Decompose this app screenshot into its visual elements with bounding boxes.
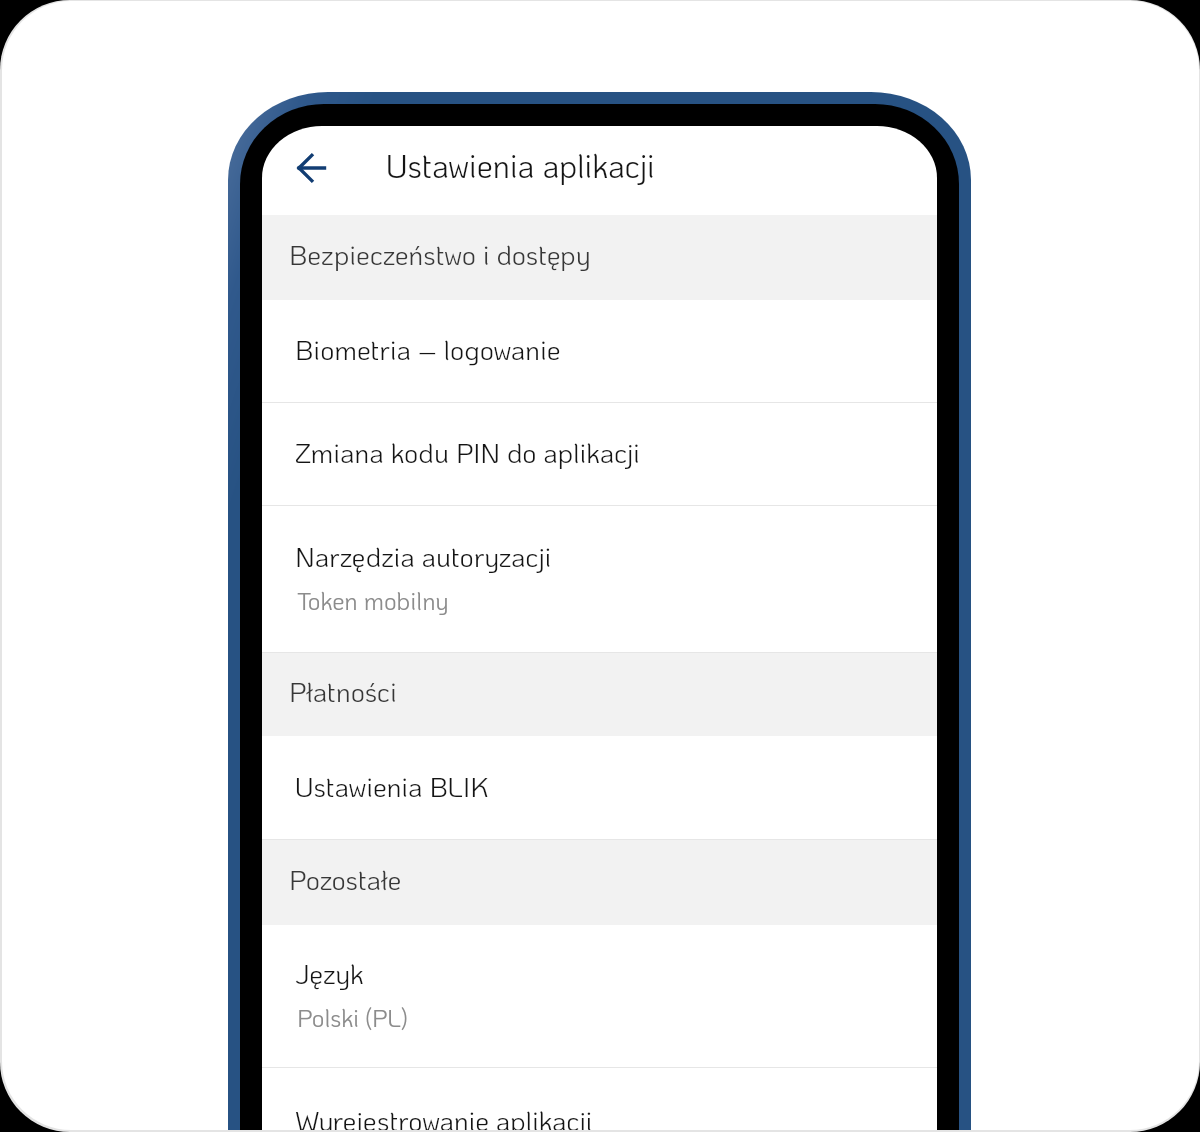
staticText: Zmiana kodu PIN do aplikacji: [295, 434, 640, 470]
staticText: Ustawienia BLIK: [295, 768, 489, 804]
staticText: Płatności: [289, 673, 397, 709]
button[interactable]: Język: [262, 925, 937, 1068]
button[interactable]: Ustawienia BLIK: [262, 736, 937, 840]
staticText: Token mobilny: [297, 584, 449, 616]
staticText: Język: [295, 955, 364, 991]
staticText: Polski (PL): [297, 1001, 409, 1033]
button[interactable]: Biometria – logowanie: [262, 300, 937, 403]
staticText: Biometria – logowanie: [295, 331, 561, 367]
staticText: Wyrejestrowanie aplikacji: [295, 1102, 593, 1130]
button[interactable]: Wyrejestrowanie aplikacji: [262, 1068, 937, 1130]
button[interactable]: Płatności: [262, 653, 937, 736]
staticText: Narzędzia autoryzacji: [295, 538, 552, 574]
button[interactable]: Bezpieczeństwo i dostępy: [262, 215, 937, 300]
button[interactable]: Narzędzia autoryzacji: [262, 506, 937, 653]
staticText: Pozostałe: [289, 861, 402, 897]
button[interactable]: Pozostałe: [262, 840, 937, 925]
staticText: Bezpieczeństwo i dostępy: [289, 236, 591, 272]
staticText: Ustawienia aplikacji: [386, 145, 655, 187]
button[interactable]: Wstecz: [283, 140, 339, 196]
button[interactable]: Zmiana kodu PIN do aplikacji: [262, 403, 937, 506]
